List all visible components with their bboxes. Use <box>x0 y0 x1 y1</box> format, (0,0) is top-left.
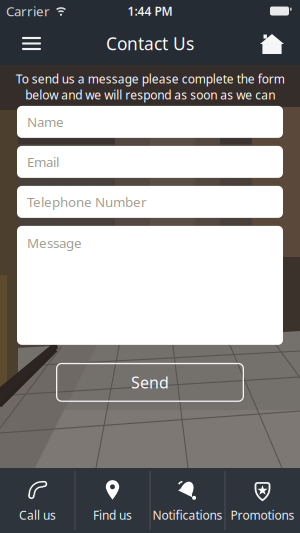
staticText: To send us a message please complete the… <box>15 71 284 103</box>
staticText: Carrier <box>6 2 50 20</box>
textField[interactable]: Message <box>27 234 283 252</box>
button[interactable]: Promotions <box>225 468 300 533</box>
staticText: Message <box>27 234 82 252</box>
button[interactable]: Menu <box>0 23 41 64</box>
textField[interactable]: Telephone Number <box>27 193 283 211</box>
staticText: Contact Us <box>106 32 194 55</box>
button[interactable]: Call us <box>0 468 75 533</box>
staticText: Notifications <box>152 507 222 523</box>
button[interactable]: Find us <box>75 468 150 533</box>
button[interactable]: Send <box>56 363 244 402</box>
staticText: Name <box>27 113 64 131</box>
button[interactable]: Home <box>259 22 300 65</box>
button[interactable]: Notifications <box>150 468 225 533</box>
staticText: Promotions <box>230 507 294 523</box>
staticText: Find us <box>93 507 132 523</box>
staticText: Send <box>131 372 169 393</box>
staticText: Email <box>27 153 59 171</box>
textField[interactable]: Email <box>27 153 283 171</box>
staticText: 1:44 PM <box>127 3 172 19</box>
staticText: Telephone Number <box>27 193 147 211</box>
staticText: Call us <box>19 507 56 523</box>
textField[interactable]: Name <box>27 113 283 131</box>
